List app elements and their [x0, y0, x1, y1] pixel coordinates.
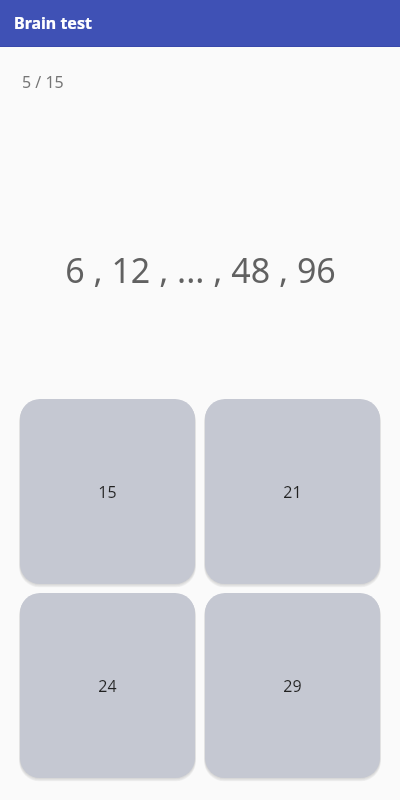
staticText: 24 [98, 675, 117, 697]
staticText: 6 , 12 , ... , 48 , 96 [65, 247, 336, 293]
button[interactable]: 29 [205, 593, 380, 778]
staticText: 21 [283, 481, 302, 503]
staticText: 29 [283, 675, 302, 697]
button[interactable]: 15 [20, 399, 195, 584]
staticText: Brain test [14, 12, 92, 34]
staticText: 15 [98, 481, 117, 503]
staticText: 5 / 15 [22, 71, 64, 93]
button[interactable]: 21 [205, 399, 380, 584]
button[interactable]: 24 [20, 593, 195, 778]
